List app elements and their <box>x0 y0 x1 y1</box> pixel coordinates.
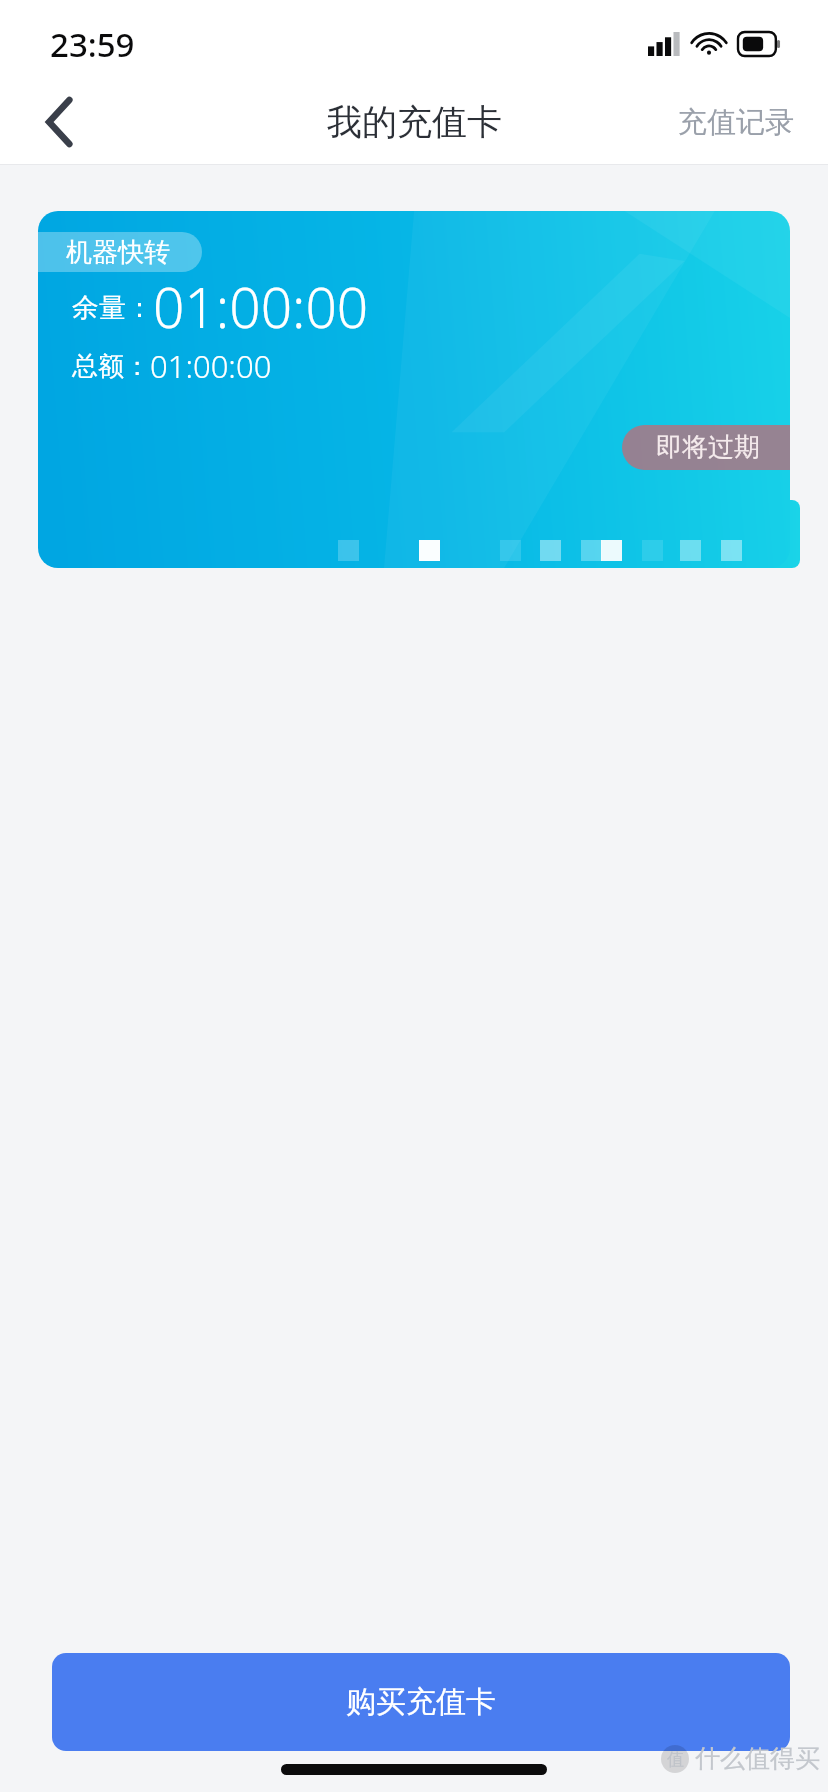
button[interactable]: 购买充值卡 <box>52 1653 790 1751</box>
button[interactable]: Back <box>24 86 96 158</box>
staticText: 余量： <box>72 291 153 325</box>
staticText: 机器快转 <box>66 236 170 269</box>
staticText: 01:00:00 <box>150 345 272 387</box>
staticText: 我的充值卡 <box>327 100 502 144</box>
staticText: 值 <box>667 1749 684 1770</box>
staticText: 总额： <box>72 350 150 383</box>
staticText: 什么值得买 <box>695 1743 820 1774</box>
staticText: 01:00:00 <box>153 269 369 343</box>
button[interactable]: 充值记录 <box>644 90 828 155</box>
staticText: 即将过期 <box>656 431 760 464</box>
staticText: 充值记录 <box>678 104 794 141</box>
staticText: 23:59 <box>50 22 135 67</box>
button[interactable]: 机器快转 <box>38 211 800 568</box>
staticText: 购买充值卡 <box>346 1683 496 1721</box>
